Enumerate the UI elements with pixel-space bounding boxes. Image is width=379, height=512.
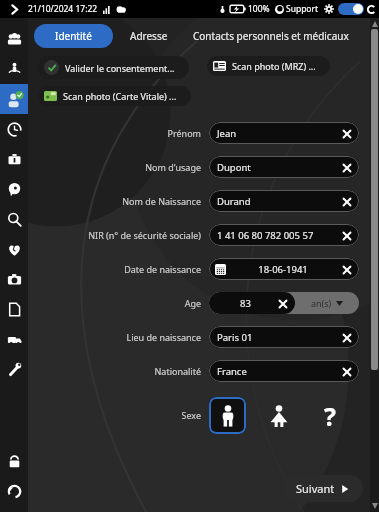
staticText: Prénom xyxy=(28,127,201,139)
staticText: Lieu de naissance xyxy=(28,331,201,343)
button[interactable]: Search xyxy=(0,204,28,234)
button[interactable]: Support xyxy=(275,3,319,15)
staticText: NIR (n° de sécurité sociale) xyxy=(28,229,201,241)
button[interactable]: Scan photo (MRZ) ... xyxy=(207,56,330,76)
button[interactable]: Clear xyxy=(340,263,353,276)
button[interactable]: Tools xyxy=(0,354,28,384)
staticText: Dupont xyxy=(217,161,340,174)
button[interactable]: Clear xyxy=(340,195,353,208)
button[interactable]: Adresse xyxy=(113,24,185,48)
button[interactable]: Settings xyxy=(324,4,334,14)
staticText: Contacts personnels et médicaux xyxy=(193,29,349,43)
staticText: Support xyxy=(286,3,319,15)
button[interactable]: France xyxy=(209,360,359,382)
button[interactable]: Clear xyxy=(340,229,353,242)
staticText: Nom de Naissance xyxy=(28,195,201,207)
button[interactable]: 1 41 06 80 782 005 57 xyxy=(209,224,359,246)
button[interactable]: Lock xyxy=(0,446,28,476)
button[interactable]: Camera xyxy=(0,264,28,294)
button[interactable]: Suivant xyxy=(282,475,363,502)
button[interactable]: Expand menu xyxy=(0,0,28,18)
staticText: Nationalité xyxy=(28,365,201,377)
button[interactable]: Clear xyxy=(276,297,289,310)
staticText: 21/10/2024 17:22 xyxy=(28,3,98,15)
button[interactable]: Jean xyxy=(209,122,359,144)
button[interactable]: Clear xyxy=(340,127,353,140)
staticText: Nom d'usage xyxy=(28,161,201,173)
button[interactable]: Reset xyxy=(0,476,28,506)
button[interactable]: Toggle dark mode xyxy=(338,3,364,15)
button[interactable]: Patient xyxy=(0,54,28,84)
button[interactable]: Messages xyxy=(0,174,28,204)
button[interactable]: Unknown xyxy=(311,397,348,434)
staticText: Adresse xyxy=(130,29,168,43)
staticText: Paris 01 xyxy=(217,331,340,344)
button[interactable]: Clear xyxy=(340,365,353,378)
button[interactable]: Identité xyxy=(34,24,113,48)
button[interactable]: Dupont xyxy=(209,156,359,178)
staticText: an(s) xyxy=(311,297,332,309)
staticText: Age xyxy=(28,297,201,309)
staticText: Identité xyxy=(55,29,92,43)
button[interactable]: Vitals xyxy=(0,234,28,264)
button[interactable]: Male xyxy=(209,397,246,434)
button[interactable]: Transport xyxy=(0,324,28,354)
staticText: Scan photo (MRZ) ... xyxy=(232,60,316,72)
button[interactable]: Clear xyxy=(340,161,353,174)
button[interactable]: 18-06-1941 xyxy=(209,258,359,280)
staticText: 83 xyxy=(215,297,276,310)
button[interactable]: Paris 01 xyxy=(209,326,359,348)
button[interactable]: 83 xyxy=(209,292,295,314)
button[interactable]: Records xyxy=(0,144,28,174)
button[interactable]: Scan photo (Carte Vitale) ... xyxy=(38,86,191,106)
staticText: Jean xyxy=(217,127,340,140)
staticText: France xyxy=(217,365,340,378)
staticText: Date de naissance xyxy=(28,263,201,275)
button[interactable]: an(s) xyxy=(295,292,359,314)
staticText: Durand xyxy=(217,195,340,208)
button[interactable]: Documents xyxy=(0,294,28,324)
button[interactable]: Valider le consentement... xyxy=(38,56,189,79)
button[interactable]: Durand xyxy=(209,190,359,212)
button[interactable]: Female xyxy=(260,397,297,434)
staticText: ? xyxy=(324,399,336,433)
staticText: Sexe xyxy=(28,409,201,421)
button[interactable]: Group xyxy=(0,24,28,54)
staticText: 1 41 06 80 782 005 57 xyxy=(217,229,340,242)
staticText: 18-06-1941 xyxy=(226,263,340,276)
button[interactable]: Contacts personnels et médicaux xyxy=(185,24,357,48)
button[interactable]: History xyxy=(0,114,28,144)
staticText: Scan photo (Carte Vitale) ... xyxy=(63,90,177,102)
staticText: Suivant xyxy=(296,481,335,496)
button[interactable]: Clear xyxy=(340,331,353,344)
staticText: 100% xyxy=(248,3,270,15)
button[interactable]: Identity xyxy=(0,84,28,114)
staticText: Valider le consentement... xyxy=(65,62,175,74)
